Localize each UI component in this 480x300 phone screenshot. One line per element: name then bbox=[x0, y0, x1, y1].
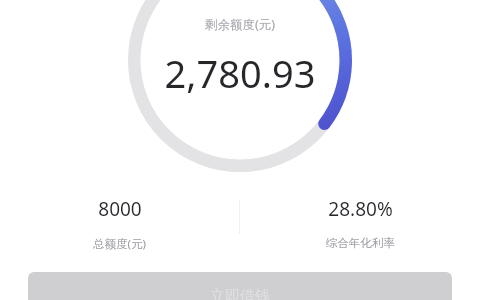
staticText: 综合年化利率 bbox=[326, 236, 395, 250]
staticText: 总额度(元) bbox=[93, 236, 146, 252]
button[interactable]: 8000 bbox=[0, 196, 239, 252]
staticText: 剩余额度(元) bbox=[0, 16, 480, 33]
staticText: 8000 bbox=[98, 196, 142, 222]
staticText: 2,780.93 bbox=[0, 47, 480, 99]
staticText: 立即借钱 bbox=[210, 287, 270, 300]
button[interactable]: 28.80% bbox=[240, 196, 480, 250]
staticText: 28.80% bbox=[328, 196, 393, 222]
